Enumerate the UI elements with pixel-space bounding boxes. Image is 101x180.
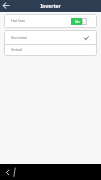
button[interactable]: Navigate up [0, 0, 12, 12]
button[interactable]: Vertical [4, 45, 97, 56]
staticText: Fast Scan [11, 19, 25, 23]
button[interactable]: Horizontal [4, 30, 97, 44]
button[interactable]: Fast Scan on [71, 18, 87, 25]
staticText: On [75, 20, 80, 24]
button[interactable]: Back [2, 167, 12, 177]
button[interactable]: Recent apps [10, 167, 20, 177]
staticText: Inverter [40, 3, 61, 10]
staticText: Vertical [11, 48, 23, 52]
staticText: Horizontal [11, 36, 27, 40]
button[interactable]: Fast Scan [4, 14, 97, 28]
